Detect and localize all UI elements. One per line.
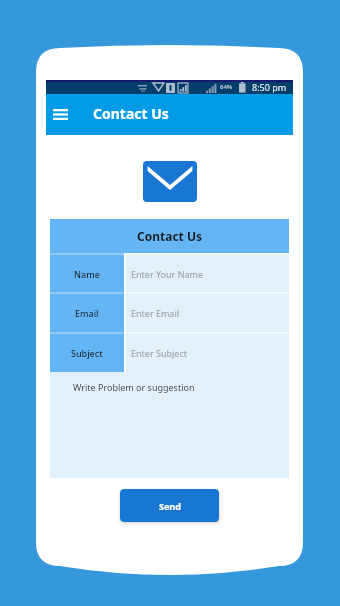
staticText: Enter Your Name (131, 268, 204, 280)
button[interactable]: Enter Email (126, 294, 289, 332)
staticText: Enter Subject (131, 347, 187, 359)
staticText: Send (159, 500, 181, 512)
button[interactable]: Name (50, 255, 124, 292)
button[interactable]: Email (143, 161, 197, 202)
staticText: 64% (220, 83, 233, 91)
staticText: Write Problem or suggestion (73, 381, 195, 393)
staticText: Enter Email (131, 307, 180, 319)
staticText: Contact Us (137, 228, 203, 244)
button[interactable]: Menu (45, 99, 75, 129)
staticText: Email (75, 307, 99, 319)
staticText: 8:50 pm (252, 81, 287, 93)
staticText: Contact Us (93, 104, 169, 123)
staticText: Subject (71, 347, 103, 359)
button[interactable]: Subject (50, 334, 124, 372)
button[interactable]: Enter Subject (126, 334, 289, 372)
button[interactable]: Write Problem or suggestion (50, 372, 289, 478)
button[interactable]: Email (50, 294, 124, 332)
button[interactable]: Enter Your Name (126, 255, 289, 292)
staticText: Name (74, 268, 100, 280)
button[interactable]: Send (120, 489, 219, 522)
